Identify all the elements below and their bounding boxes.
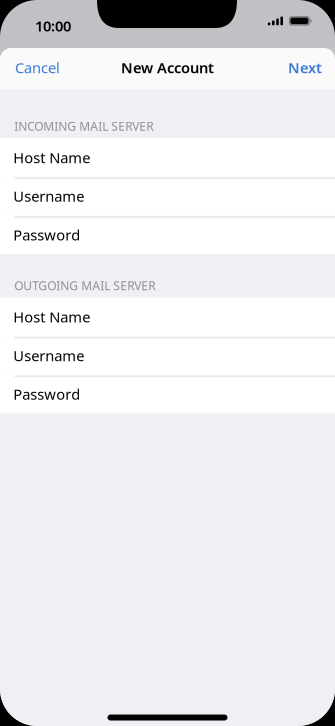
- button[interactable]: Host Name: [0, 297, 335, 336]
- staticText: INCOMING MAIL SERVER: [14, 118, 153, 134]
- staticText: New Account: [121, 58, 214, 77]
- button[interactable]: Host Name: [0, 138, 335, 177]
- staticText: OUTGOING MAIL SERVER: [14, 278, 155, 293]
- staticText: Username: [13, 346, 84, 365]
- button[interactable]: Username: [0, 336, 335, 375]
- staticText: Next: [288, 58, 322, 77]
- button[interactable]: Username: [0, 177, 335, 215]
- staticText: Password: [13, 384, 80, 404]
- staticText: Cancel: [15, 58, 60, 77]
- button[interactable]: Next: [239, 48, 335, 90]
- button[interactable]: Password: [0, 215, 335, 254]
- button[interactable]: Password: [0, 375, 335, 413]
- staticText: Host Name: [13, 148, 90, 167]
- staticText: Password: [13, 225, 80, 244]
- staticText: 10:00: [35, 16, 71, 35]
- staticText: Username: [13, 186, 84, 206]
- staticText: Host Name: [13, 307, 90, 327]
- button[interactable]: Cancel: [0, 48, 96, 90]
